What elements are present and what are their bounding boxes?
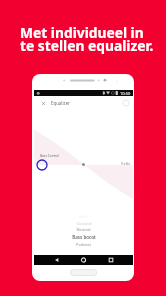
staticText: Rock bbox=[79, 214, 88, 219]
staticText: Classical bbox=[76, 221, 92, 226]
button[interactable]: Home bbox=[74, 255, 94, 265]
button[interactable]: Neutral bbox=[34, 227, 133, 233]
button[interactable]: Recent apps bbox=[101, 255, 121, 265]
staticText: Neutral bbox=[76, 227, 91, 232]
button[interactable]: Bass boost bbox=[34, 234, 133, 240]
staticText: Met individueel in te stellen equalizer. bbox=[20, 23, 154, 55]
staticText: Equalizer bbox=[51, 100, 70, 106]
staticText: Treble bbox=[121, 162, 131, 166]
button[interactable]: Close bbox=[39, 99, 48, 108]
button[interactable]: Podcast bbox=[34, 242, 133, 248]
staticText: Bass boost bbox=[72, 234, 96, 240]
button[interactable]: Bass control handle bbox=[36, 159, 48, 171]
button[interactable]: More options bbox=[122, 99, 130, 107]
staticText: 10:50 bbox=[120, 91, 131, 96]
button[interactable]: Classical bbox=[34, 221, 133, 227]
staticText: Bass Control bbox=[40, 154, 59, 158]
staticText: Podcast bbox=[76, 242, 91, 247]
button[interactable]: Back bbox=[47, 255, 67, 265]
